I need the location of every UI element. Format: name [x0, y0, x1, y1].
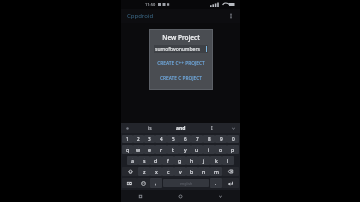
button[interactable]: Symbols [122, 178, 137, 188]
staticText: , [155, 180, 157, 186]
button[interactable]: · [198, 167, 210, 176]
button[interactable]: · [186, 167, 198, 176]
staticText: sumoftwonumbers [155, 46, 200, 53]
staticText: · [144, 157, 145, 161]
staticText: q [126, 146, 130, 153]
button[interactable]: · [144, 145, 155, 154]
button[interactable]: Enter [222, 178, 239, 188]
button[interactable]: · [210, 167, 222, 176]
button[interactable]: 3 [144, 135, 155, 143]
button[interactable]: Space [163, 179, 209, 187]
staticText: · [204, 168, 205, 172]
button[interactable]: · [179, 145, 191, 154]
button[interactable]: 7 [191, 135, 203, 143]
staticText: · [127, 146, 128, 150]
button[interactable]: · [150, 156, 162, 165]
staticText: 11:50 [145, 2, 156, 7]
staticText: a [131, 157, 134, 164]
staticText: e [148, 146, 151, 153]
staticText: · [216, 157, 217, 161]
button[interactable]: · [162, 156, 174, 165]
staticText: p [231, 146, 235, 153]
button[interactable]: · [138, 156, 150, 165]
button[interactable]: · [174, 156, 186, 165]
staticText: · [161, 146, 162, 150]
staticText: 0 [232, 136, 235, 142]
button[interactable]: 9 [215, 135, 227, 143]
staticText: 2 [137, 136, 140, 142]
button[interactable]: · [138, 167, 150, 176]
staticText: · [192, 168, 193, 172]
button[interactable]: Voice input [121, 123, 134, 133]
staticText: 9 [220, 136, 223, 142]
button[interactable]: · [167, 145, 179, 154]
staticText: · [204, 157, 205, 161]
button[interactable]: , [150, 178, 162, 188]
button[interactable]: Emoji [137, 178, 150, 188]
button[interactable]: Back [200, 190, 240, 202]
button[interactable]: · [155, 145, 167, 154]
button[interactable]: More options [225, 10, 237, 22]
button[interactable]: is [134, 123, 165, 133]
staticText: · [156, 168, 157, 172]
button[interactable]: · [174, 167, 186, 176]
button[interactable]: 1 [122, 135, 133, 143]
button[interactable]: 5 [167, 135, 179, 143]
button[interactable]: · [198, 156, 210, 165]
button[interactable]: · [122, 145, 133, 154]
staticText: · [233, 146, 234, 150]
button[interactable]: · [191, 145, 203, 154]
button[interactable]: 4 [155, 135, 167, 143]
button[interactable]: 6 [179, 135, 191, 143]
staticText: · [138, 146, 139, 150]
button[interactable]: · [186, 156, 198, 165]
staticText: i [208, 146, 210, 153]
staticText: · [185, 146, 186, 150]
button[interactable]: sumoftwonumbers [154, 45, 208, 53]
staticText: 7 [196, 136, 199, 142]
staticText: 4 [160, 136, 163, 142]
button[interactable]: I [196, 123, 227, 133]
staticText: s [143, 157, 146, 164]
staticText: t [172, 146, 174, 153]
button[interactable]: 8 [203, 135, 215, 143]
staticText: u [195, 146, 199, 153]
staticText: · [216, 168, 217, 172]
staticText: · [209, 146, 210, 150]
button[interactable]: · [222, 156, 234, 165]
staticText: y [184, 146, 187, 153]
button[interactable]: · [162, 167, 174, 176]
staticText: g [178, 157, 182, 164]
staticText: o [219, 146, 223, 153]
button[interactable]: · [210, 156, 222, 165]
staticText: h [190, 157, 194, 164]
button[interactable]: · [203, 145, 215, 154]
button[interactable]: CREATE C++ PROJECT [154, 59, 208, 67]
button[interactable]: Recents [121, 190, 160, 202]
staticText: x [155, 168, 158, 175]
button[interactable]: · [133, 145, 144, 154]
button[interactable]: . [210, 178, 222, 188]
staticText: · [173, 146, 174, 150]
staticText: w [136, 146, 141, 153]
staticText: 3 [148, 136, 151, 142]
staticText: · [144, 168, 145, 172]
button[interactable]: More suggestions [227, 123, 240, 133]
button[interactable]: Shift [122, 167, 138, 176]
button[interactable]: · [215, 145, 227, 154]
button[interactable]: Home [160, 190, 200, 202]
staticText: I [211, 125, 213, 132]
staticText: · [221, 146, 222, 150]
button[interactable]: · [127, 156, 138, 165]
button[interactable]: Backspace [222, 167, 239, 176]
button[interactable]: CREATE C PROJECT [154, 74, 208, 82]
button[interactable]: · [227, 145, 239, 154]
button[interactable]: · [150, 167, 162, 176]
staticText: · [180, 157, 181, 161]
button[interactable]: 2 [133, 135, 144, 143]
staticText: and [176, 125, 186, 132]
staticText: r [160, 146, 163, 153]
button[interactable]: 0 [227, 135, 239, 143]
button[interactable]: and [165, 123, 196, 133]
staticText: · [228, 157, 229, 161]
